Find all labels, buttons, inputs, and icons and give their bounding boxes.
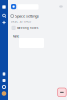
button[interactable]: More options: [58, 4, 64, 9]
button[interactable]: Search: [0, 11, 8, 19]
button[interactable]: Edit: [58, 88, 66, 97]
button[interactable]: Home: [0, 3, 8, 11]
button[interactable]: Meeting notes: [11, 26, 38, 30]
staticText: Name: [12, 35, 19, 38]
button[interactable]: Settings: [0, 83, 8, 91]
button[interactable]: Workspace: [11, 4, 16, 9]
staticText: BASIC SETTINGS: [10, 20, 30, 23]
button[interactable]: Documents: [0, 70, 8, 78]
button[interactable]: Account: [0, 89, 8, 97]
button[interactable]: Apps: [0, 76, 8, 84]
staticText: Meeting notes: [17, 26, 38, 30]
staticText: Space settings: [15, 13, 39, 19]
button[interactable]: Create: [0, 18, 8, 26]
